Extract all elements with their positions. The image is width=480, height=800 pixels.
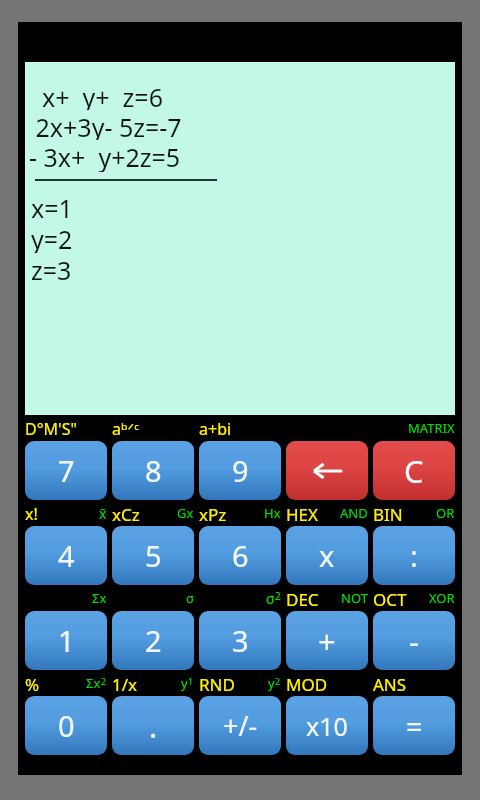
staticText: OCT bbox=[373, 588, 407, 608]
staticText: NOT bbox=[341, 589, 368, 607]
staticText: D°M'S" bbox=[25, 418, 77, 438]
staticText: BIN bbox=[373, 503, 403, 523]
staticText: - 3x+ y+2z=5 bbox=[29, 140, 181, 172]
button[interactable]: 4 bbox=[25, 526, 107, 585]
button[interactable]: = bbox=[373, 696, 455, 755]
staticText: σ bbox=[266, 589, 275, 608]
staticText: 7 bbox=[58, 451, 75, 490]
staticText: DEC bbox=[286, 588, 319, 608]
staticText: MOD bbox=[286, 673, 328, 693]
staticText: 1 bbox=[58, 621, 75, 660]
staticText: XOR bbox=[429, 589, 455, 607]
staticText: Σx bbox=[92, 589, 107, 607]
staticText: aᵇᐟᶜ bbox=[112, 418, 140, 438]
staticText: xPz bbox=[199, 503, 227, 523]
button[interactable]: +/- bbox=[199, 696, 281, 755]
staticText: x10 bbox=[306, 709, 348, 743]
button[interactable]: : bbox=[373, 526, 455, 585]
staticText: HEX bbox=[286, 503, 319, 523]
button[interactable]: 8 bbox=[112, 441, 194, 500]
staticText: 3 bbox=[232, 621, 249, 660]
staticText: ANS bbox=[373, 673, 407, 693]
button[interactable]: - bbox=[373, 611, 455, 670]
staticText: σ bbox=[186, 589, 194, 607]
staticText: 6 bbox=[232, 536, 249, 575]
staticText: % bbox=[25, 673, 40, 693]
button[interactable]: Backspace bbox=[286, 441, 368, 500]
staticText: Σx bbox=[86, 674, 101, 692]
staticText: y=2 bbox=[31, 222, 73, 253]
staticText: x! bbox=[25, 503, 38, 523]
staticText: : bbox=[410, 536, 418, 575]
staticText: +/- bbox=[223, 707, 258, 744]
button[interactable]: x bbox=[286, 526, 368, 585]
staticText: AND bbox=[340, 504, 368, 522]
staticText: 4 bbox=[58, 536, 75, 575]
button[interactable]: 3 bbox=[199, 611, 281, 670]
button[interactable]: 7 bbox=[25, 441, 107, 500]
staticText: 2 bbox=[101, 675, 107, 687]
staticText: C bbox=[404, 450, 424, 492]
staticText: + bbox=[318, 620, 336, 662]
button[interactable]: 5 bbox=[112, 526, 194, 585]
button[interactable]: 0 bbox=[25, 696, 107, 755]
staticText: MATRIX bbox=[408, 419, 455, 437]
button[interactable]: . bbox=[112, 696, 194, 755]
staticText: OR bbox=[436, 504, 455, 522]
staticText: . bbox=[149, 705, 158, 747]
staticText: 8 bbox=[145, 451, 162, 490]
button[interactable]: C bbox=[373, 441, 455, 500]
button[interactable]: + bbox=[286, 611, 368, 670]
staticText: a+bi bbox=[199, 418, 232, 438]
staticText: Gx bbox=[177, 504, 194, 522]
staticText: 2 bbox=[145, 621, 162, 660]
staticText: - bbox=[409, 620, 419, 662]
staticText: 2 bbox=[275, 675, 281, 687]
staticText: y bbox=[268, 674, 275, 692]
staticText: 5 bbox=[145, 536, 162, 575]
staticText: Hx bbox=[264, 504, 281, 522]
staticText: 9 bbox=[232, 451, 249, 490]
button[interactable]: 9 bbox=[199, 441, 281, 500]
staticText: 0 bbox=[58, 706, 75, 745]
staticText: RND bbox=[199, 673, 235, 693]
staticText: x+ y+ z=6 bbox=[29, 80, 163, 110]
staticText: 1 bbox=[188, 675, 194, 687]
staticText: x bbox=[319, 536, 335, 575]
staticText: z=3 bbox=[31, 253, 72, 284]
staticText: y bbox=[181, 674, 188, 692]
button[interactable]: 1 bbox=[25, 611, 107, 670]
staticText: 2x+3y- 5z=-7 bbox=[29, 110, 182, 140]
staticText: 2 bbox=[275, 589, 281, 603]
staticText: xCz bbox=[112, 503, 140, 523]
button[interactable]: x10 bbox=[286, 696, 368, 755]
staticText: x=1 bbox=[31, 191, 73, 222]
button[interactable]: 6 bbox=[199, 526, 281, 585]
button[interactable]: 2 bbox=[112, 611, 194, 670]
staticText: = bbox=[406, 706, 423, 745]
staticText: 1/x bbox=[112, 673, 138, 693]
staticText: x̄ bbox=[99, 504, 107, 523]
